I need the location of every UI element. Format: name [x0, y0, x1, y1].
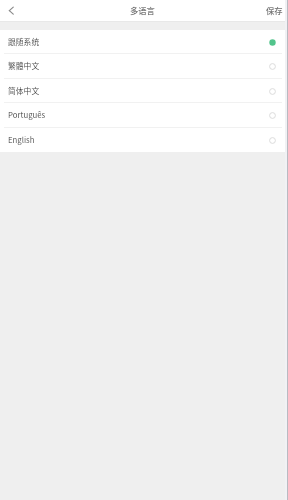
staticText: English: [8, 134, 35, 145]
staticText: 跟随系统: [8, 36, 40, 47]
staticText: Português: [8, 109, 46, 120]
button[interactable]: Back: [0, 0, 22, 22]
staticText: 保存: [266, 4, 283, 16]
staticText: 多语言: [130, 4, 155, 16]
button[interactable]: Português: [0, 103, 285, 128]
staticText: 简体中文: [8, 85, 40, 96]
button[interactable]: 繁體中文: [0, 54, 285, 79]
button[interactable]: 跟随系统: [0, 30, 285, 54]
button[interactable]: 简体中文: [0, 79, 285, 103]
button[interactable]: 保存: [259, 0, 285, 22]
button[interactable]: English: [0, 128, 285, 152]
staticText: 繁體中文: [8, 60, 40, 71]
